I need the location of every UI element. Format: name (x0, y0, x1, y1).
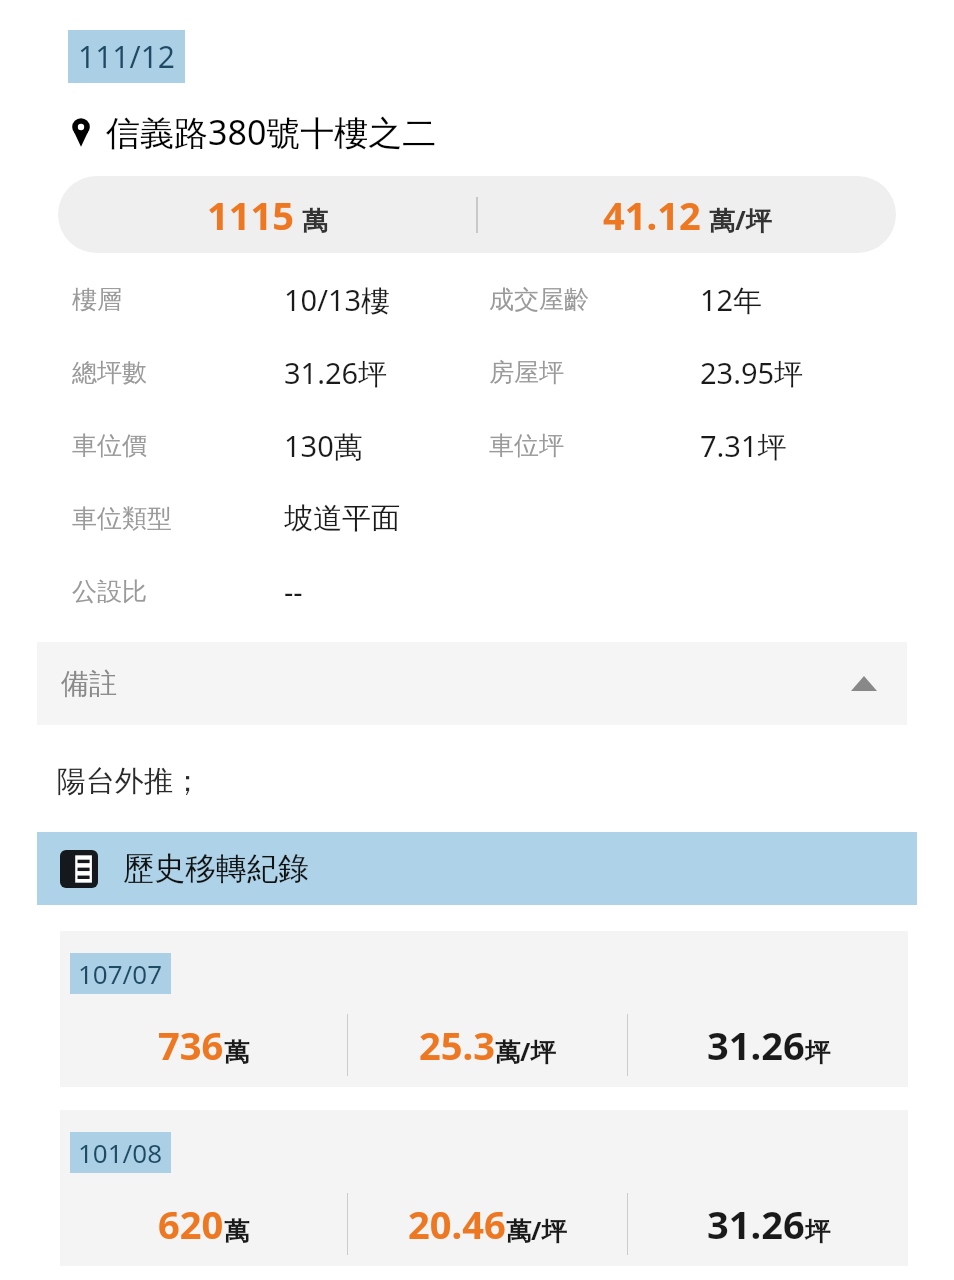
staticText: 樓層 (72, 284, 122, 315)
staticText: 總坪數 (72, 357, 147, 388)
staticText: 歷史移轉紀錄 (123, 849, 309, 888)
staticText: 25.3 (419, 1019, 495, 1071)
staticText: 20.46 (408, 1198, 506, 1250)
staticText: 車位類型 (72, 503, 172, 534)
button[interactable]: 101/08 (60, 1110, 908, 1266)
staticText: 101/08 (78, 1135, 163, 1170)
staticText: 10/13樓 (284, 280, 391, 320)
staticText: 31.26坪 (284, 353, 388, 393)
staticText: 31.26 (707, 1019, 805, 1071)
staticText: 車位價 (72, 430, 147, 461)
staticText: 31.26 (707, 1198, 805, 1250)
staticText: 1115 (207, 189, 294, 241)
staticText: 車位坪 (489, 430, 564, 461)
staticText: 坡道平面 (284, 500, 400, 537)
staticText: 萬/坪 (506, 1213, 567, 1247)
staticText: 信義路380號十樓之二 (106, 109, 437, 155)
staticText: 111/12 (78, 36, 175, 77)
staticText: 萬 (224, 1216, 249, 1247)
staticText: -- (284, 572, 303, 611)
staticText: 107/07 (78, 956, 163, 991)
staticText: 成交屋齡 (489, 284, 589, 315)
staticText: 坪 (805, 1037, 830, 1068)
button[interactable]: 歷史移轉紀錄 (37, 832, 917, 905)
button[interactable]: 備註 (37, 642, 907, 725)
staticText: 736 (158, 1019, 224, 1071)
staticText: 坪 (805, 1216, 830, 1247)
staticText: 41.12 (603, 189, 701, 241)
staticText: 620 (158, 1198, 224, 1250)
staticText: 萬/坪 (709, 202, 772, 238)
staticText: 12年 (700, 280, 763, 320)
staticText: 萬 (224, 1037, 249, 1068)
other: Collapse remarks (851, 676, 877, 691)
staticText: 萬/坪 (495, 1034, 556, 1068)
staticText: 備註 (61, 666, 117, 701)
staticText: 萬 (302, 205, 328, 238)
staticText: 7.31坪 (700, 426, 787, 466)
button[interactable]: 107/07 (60, 931, 908, 1087)
staticText: 房屋坪 (489, 357, 564, 388)
staticText: 陽台外推； (57, 763, 202, 800)
staticText: 公設比 (72, 576, 147, 607)
staticText: 23.95坪 (700, 353, 804, 393)
staticText: 130萬 (284, 426, 363, 466)
